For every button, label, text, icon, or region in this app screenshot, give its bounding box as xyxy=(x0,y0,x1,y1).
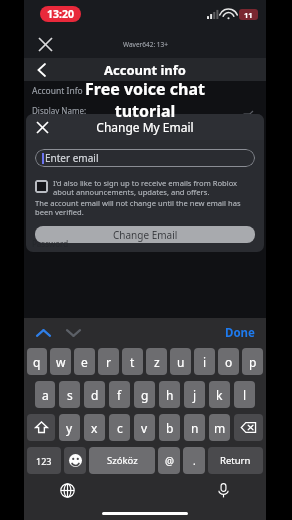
staticText: z xyxy=(154,354,160,370)
button[interactable]: j xyxy=(184,381,205,408)
button[interactable]: o xyxy=(218,348,239,375)
staticText: h xyxy=(166,387,174,403)
button[interactable]: Emoji xyxy=(64,447,86,474)
staticText: Enter email xyxy=(45,151,99,165)
staticText: j xyxy=(193,387,197,403)
button[interactable]: I'd also like to sign up to receive emai… xyxy=(35,178,255,197)
button[interactable]: t xyxy=(122,348,143,375)
staticText: Account info xyxy=(104,61,186,79)
staticText: w xyxy=(56,354,66,370)
button[interactable]: c xyxy=(109,414,130,441)
button[interactable]: Enter email xyxy=(35,149,255,167)
button[interactable]: Previous field xyxy=(32,322,54,344)
staticText: a xyxy=(42,387,49,403)
staticText: r xyxy=(106,354,111,370)
button[interactable]: @ xyxy=(158,447,180,474)
staticText: Szóköz xyxy=(107,454,138,467)
staticText: Waver642: 13+ xyxy=(123,40,168,49)
staticText: The account email will not change until … xyxy=(35,198,255,217)
button[interactable]: f xyxy=(109,381,130,408)
staticText: i xyxy=(203,354,207,370)
staticText: I'd also like to sign up to receive emai… xyxy=(53,178,255,197)
button[interactable]: Edit xyxy=(240,135,256,151)
staticText: l xyxy=(243,387,247,403)
staticText: o xyxy=(225,354,233,370)
staticText: Change My Email xyxy=(96,119,194,135)
staticText: e xyxy=(81,354,88,370)
button[interactable]: i xyxy=(194,348,215,375)
staticText: y xyxy=(66,420,73,436)
staticText: m xyxy=(214,420,226,436)
staticText: Change Email xyxy=(113,228,178,242)
button[interactable]: Username: xyxy=(24,132,266,153)
staticText: Waver642 xyxy=(32,116,68,126)
button[interactable]: Display Name: xyxy=(24,105,266,126)
staticText: Display Name: xyxy=(32,105,87,116)
button[interactable]: h xyxy=(159,381,180,408)
button[interactable]: Switch language xyxy=(56,479,78,501)
staticText: Free voice chat xyxy=(55,78,235,100)
button[interactable]: v xyxy=(134,414,155,441)
button[interactable]: w xyxy=(50,348,71,375)
button[interactable]: e xyxy=(74,348,95,375)
button[interactable]: b xyxy=(159,414,180,441)
staticText: v xyxy=(141,420,148,436)
staticText: Password xyxy=(32,238,69,249)
button[interactable]: Edit xyxy=(240,108,256,124)
button[interactable]: Back xyxy=(30,59,52,81)
staticText: . xyxy=(193,454,196,468)
staticText: Done xyxy=(225,325,255,341)
button[interactable]: g xyxy=(134,381,155,408)
staticText: u xyxy=(177,354,185,370)
button[interactable]: u xyxy=(170,348,191,375)
staticText: c xyxy=(117,420,123,436)
button[interactable]: Close xyxy=(32,31,58,57)
button[interactable]: Change Email xyxy=(35,226,255,243)
staticText: 11 xyxy=(244,10,253,20)
button[interactable]: Next field xyxy=(62,322,84,344)
button[interactable]: r xyxy=(98,348,119,375)
button[interactable]: 123 xyxy=(27,447,61,474)
staticText: 13:20 xyxy=(47,7,74,21)
staticText: Waver642 xyxy=(32,143,68,153)
button[interactable]: . xyxy=(183,447,205,474)
button[interactable]: p xyxy=(242,348,263,375)
button[interactable]: Close dialog xyxy=(31,116,53,138)
button[interactable]: d xyxy=(84,381,105,408)
staticText: f xyxy=(117,387,122,403)
button[interactable]: Backspace xyxy=(234,414,263,441)
button[interactable]: Shift xyxy=(27,414,55,441)
staticText: Account Info xyxy=(32,85,83,97)
staticText: x xyxy=(91,420,98,436)
button[interactable]: x xyxy=(84,414,105,441)
button[interactable]: s xyxy=(59,381,80,408)
staticText: g xyxy=(141,387,149,403)
button[interactable]: n xyxy=(184,414,205,441)
staticText: b xyxy=(166,420,174,436)
button[interactable]: Done xyxy=(223,323,257,343)
button[interactable]: Dictation xyxy=(212,479,234,501)
staticText: n xyxy=(191,420,199,436)
staticText: t xyxy=(130,354,135,370)
staticText: Username: xyxy=(32,132,74,143)
button[interactable]: k xyxy=(209,381,230,408)
button[interactable]: z xyxy=(146,348,167,375)
staticText: tutorial xyxy=(55,100,235,122)
button[interactable]: q xyxy=(27,348,47,375)
staticText: 123 xyxy=(36,455,52,467)
staticText: k xyxy=(216,387,223,403)
staticText: p xyxy=(249,354,257,370)
staticText: d xyxy=(91,387,99,403)
button[interactable]: y xyxy=(59,414,80,441)
button[interactable]: Szóköz xyxy=(89,447,155,474)
button[interactable]: m xyxy=(209,414,230,441)
staticText: q xyxy=(33,354,41,370)
staticText: @ xyxy=(165,454,174,468)
button[interactable]: l xyxy=(234,381,255,408)
button[interactable]: a xyxy=(35,381,55,408)
button[interactable]: Return xyxy=(208,447,263,474)
staticText: s xyxy=(67,387,73,403)
staticText: Return xyxy=(220,454,251,467)
